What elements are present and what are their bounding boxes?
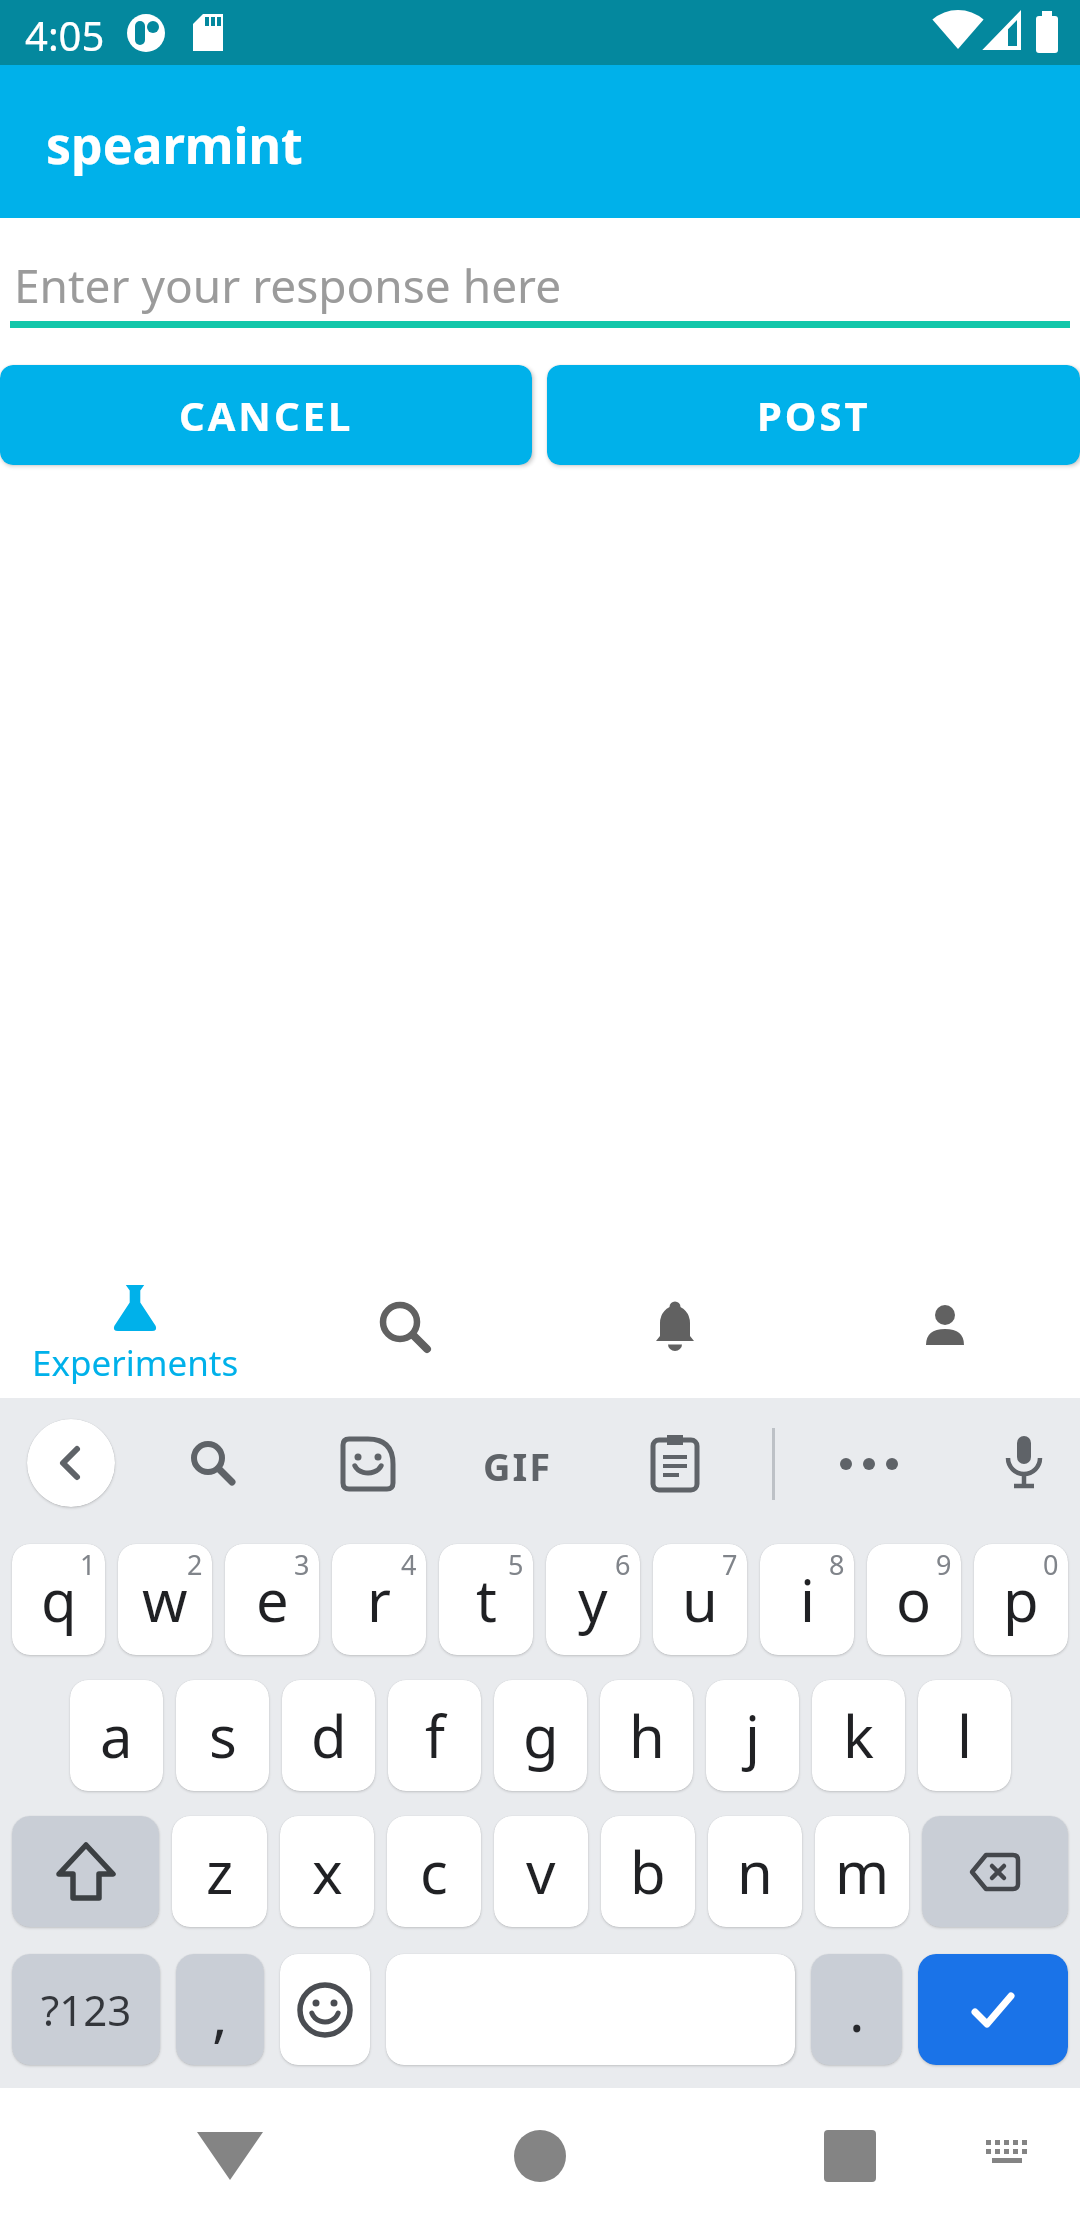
- staticText: CANCEL: [179, 388, 354, 442]
- staticText: spearmint: [46, 111, 303, 179]
- button[interactable]: i: [760, 1544, 854, 1655]
- staticText: e: [256, 1560, 289, 1639]
- button[interactable]: ,: [176, 1954, 264, 2065]
- button[interactable]: [810, 1248, 1080, 1398]
- button[interactable]: k: [812, 1680, 905, 1791]
- button[interactable]: [197, 2132, 263, 2180]
- button[interactable]: n: [708, 1816, 802, 1927]
- button[interactable]: [650, 1435, 700, 1493]
- button[interactable]: l: [918, 1680, 1011, 1791]
- staticText: ,: [212, 1974, 228, 2053]
- staticText: .: [849, 1970, 865, 2049]
- staticText: t: [476, 1560, 497, 1639]
- button[interactable]: x: [280, 1816, 374, 1927]
- button[interactable]: u: [653, 1544, 747, 1655]
- staticText: r: [367, 1560, 391, 1639]
- staticText: m: [835, 1832, 890, 1911]
- button[interactable]: [27, 1419, 115, 1507]
- staticText: Enter your response here: [14, 254, 562, 317]
- button[interactable]: [280, 1954, 370, 2065]
- staticText: o: [896, 1560, 932, 1639]
- button[interactable]: m: [815, 1816, 909, 1927]
- button[interactable]: [1002, 1436, 1046, 1494]
- staticText: 4:05: [25, 8, 105, 62]
- button[interactable]: p: [974, 1544, 1068, 1655]
- staticText: 2: [187, 1546, 203, 1583]
- staticText: s: [209, 1696, 237, 1775]
- button[interactable]: h: [600, 1680, 693, 1791]
- staticText: 1: [80, 1546, 96, 1583]
- staticText: 8: [829, 1546, 845, 1583]
- button[interactable]: o: [867, 1544, 961, 1655]
- button[interactable]: [540, 1248, 810, 1398]
- staticText: 6: [615, 1546, 631, 1583]
- staticText: Experiments: [32, 1339, 239, 1387]
- staticText: q: [41, 1560, 77, 1639]
- button[interactable]: POST: [547, 365, 1080, 465]
- staticText: 9: [936, 1546, 952, 1583]
- button[interactable]: GIF: [483, 1440, 553, 1492]
- staticText: g: [523, 1696, 559, 1775]
- staticText: 3: [294, 1546, 310, 1583]
- button[interactable]: [838, 1456, 900, 1472]
- button[interactable]: CANCEL: [0, 365, 532, 465]
- staticText: j: [745, 1696, 760, 1775]
- button[interactable]: e: [225, 1544, 319, 1655]
- button[interactable]: r: [332, 1544, 426, 1655]
- staticText: POST: [757, 388, 871, 442]
- button[interactable]: g: [494, 1680, 587, 1791]
- button[interactable]: c: [387, 1816, 481, 1927]
- button[interactable]: [514, 2130, 566, 2182]
- button[interactable]: .: [811, 1954, 902, 2065]
- staticText: u: [682, 1560, 718, 1639]
- button[interactable]: q: [12, 1544, 105, 1655]
- staticText: k: [843, 1696, 874, 1775]
- button[interactable]: [341, 1437, 395, 1491]
- button[interactable]: ?123: [12, 1954, 160, 2065]
- button[interactable]: y: [546, 1544, 640, 1655]
- button[interactable]: w: [118, 1544, 212, 1655]
- staticText: v: [526, 1832, 556, 1911]
- button[interactable]: [984, 2138, 1030, 2174]
- staticText: l: [957, 1696, 972, 1775]
- staticText: 0: [1043, 1546, 1059, 1583]
- staticText: y: [578, 1560, 608, 1639]
- staticText: w: [142, 1560, 188, 1639]
- button[interactable]: f: [388, 1680, 481, 1791]
- staticText: c: [420, 1832, 448, 1911]
- button[interactable]: v: [494, 1816, 588, 1927]
- button[interactable]: [270, 1248, 540, 1398]
- button[interactable]: j: [706, 1680, 799, 1791]
- staticText: n: [737, 1832, 773, 1911]
- button[interactable]: [12, 1816, 159, 1927]
- staticText: 5: [508, 1546, 524, 1583]
- staticText: x: [312, 1832, 343, 1911]
- button[interactable]: Experiments: [0, 1248, 270, 1398]
- staticText: 4: [401, 1546, 417, 1583]
- staticText: ?123: [41, 1981, 132, 2038]
- button[interactable]: s: [176, 1680, 269, 1791]
- staticText: z: [206, 1832, 234, 1911]
- button[interactable]: [188, 1438, 238, 1488]
- staticText: b: [630, 1832, 666, 1911]
- staticText: f: [425, 1696, 445, 1775]
- staticText: p: [1003, 1560, 1039, 1639]
- staticText: a: [100, 1696, 133, 1775]
- button[interactable]: z: [172, 1816, 267, 1927]
- button[interactable]: t: [439, 1544, 533, 1655]
- staticText: 7: [722, 1546, 738, 1583]
- staticText: h: [629, 1696, 665, 1775]
- staticText: d: [311, 1696, 347, 1775]
- button[interactable]: b: [601, 1816, 695, 1927]
- button[interactable]: [824, 2130, 876, 2182]
- button[interactable]: [922, 1816, 1068, 1927]
- button[interactable]: a: [70, 1680, 163, 1791]
- button[interactable]: [918, 1954, 1068, 2065]
- button[interactable]: d: [282, 1680, 375, 1791]
- staticText: i: [800, 1560, 815, 1639]
